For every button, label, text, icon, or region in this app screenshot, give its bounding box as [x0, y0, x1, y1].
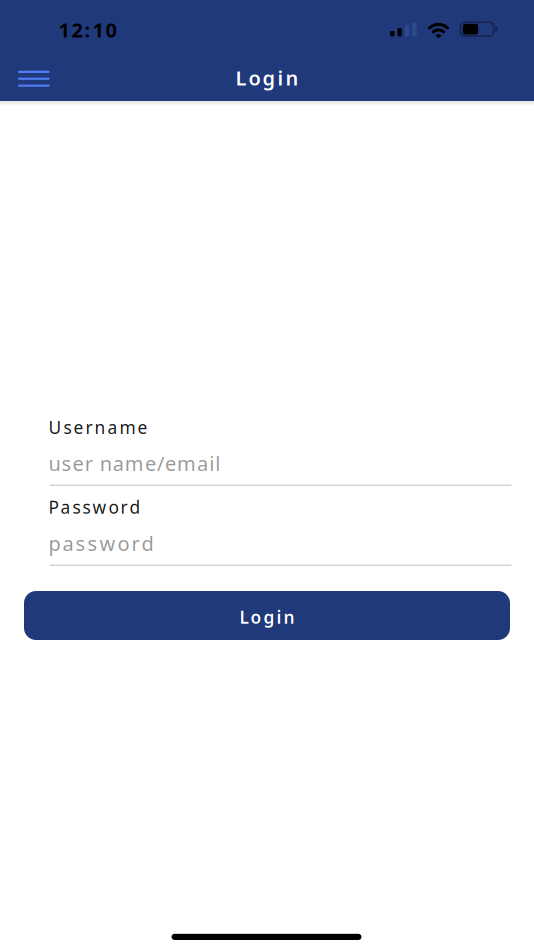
staticText: U s e r n a m e: [48, 416, 147, 439]
staticText: 1 2 : 1 0: [58, 16, 116, 43]
button[interactable]: Login: [24, 591, 510, 640]
staticText: L o g i n: [239, 606, 294, 629]
button[interactable]: Password field: [48, 530, 511, 566]
staticText: user name/email: [48, 450, 220, 477]
staticText: P a s s w o r d: [48, 495, 140, 518]
button[interactable]: Username field: [48, 450, 511, 486]
staticText: L o g i n: [235, 64, 298, 91]
button[interactable]: Menu: [8, 61, 60, 97]
staticText: p a s s w o r d: [48, 530, 153, 557]
